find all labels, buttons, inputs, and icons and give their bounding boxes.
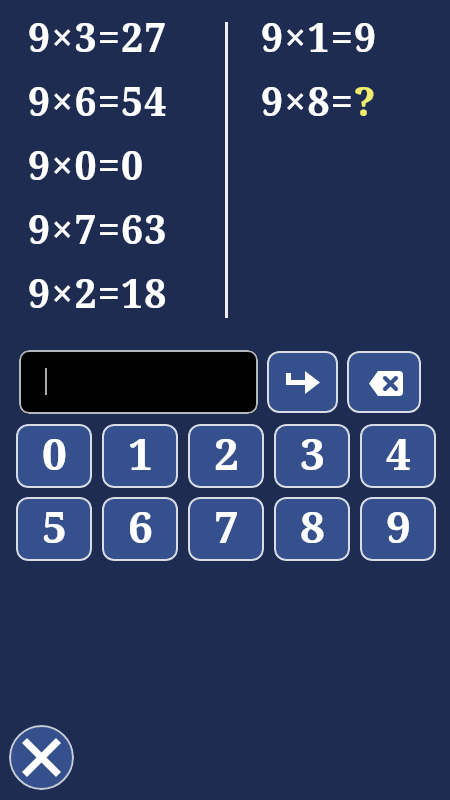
staticText: 7	[214, 497, 239, 556]
staticText: 9×7=63	[28, 202, 168, 255]
button[interactable]: 7	[188, 497, 264, 561]
button[interactable]	[9, 725, 74, 790]
staticText: 9×1=9	[261, 10, 378, 63]
staticText: 9×8=?	[261, 74, 377, 127]
button[interactable]	[19, 350, 258, 414]
staticText: 2	[214, 424, 239, 483]
staticText: 9×0=0	[28, 138, 145, 191]
button[interactable]: 6	[102, 497, 178, 561]
button[interactable]	[267, 351, 338, 413]
staticText: 9×6=54	[28, 74, 168, 127]
button[interactable]: 2	[188, 424, 264, 488]
staticText: 9×3=27	[28, 10, 168, 63]
staticText: 1	[128, 424, 153, 483]
button[interactable]: 4	[360, 424, 436, 488]
staticText: 5	[42, 497, 67, 556]
button[interactable]: 9	[360, 497, 436, 561]
staticText: 8	[300, 497, 325, 556]
staticText: 0	[42, 424, 67, 483]
button[interactable]	[347, 351, 421, 413]
staticText: 9	[386, 497, 411, 556]
staticText: 9×2=18	[28, 266, 168, 319]
button[interactable]: 5	[16, 497, 92, 561]
staticText: 6	[128, 497, 153, 556]
button[interactable]: 8	[274, 497, 350, 561]
button[interactable]: 3	[274, 424, 350, 488]
button[interactable]: 0	[16, 424, 92, 488]
staticText: 3	[300, 424, 325, 483]
staticText: 4	[386, 424, 411, 483]
button[interactable]: 1	[102, 424, 178, 488]
